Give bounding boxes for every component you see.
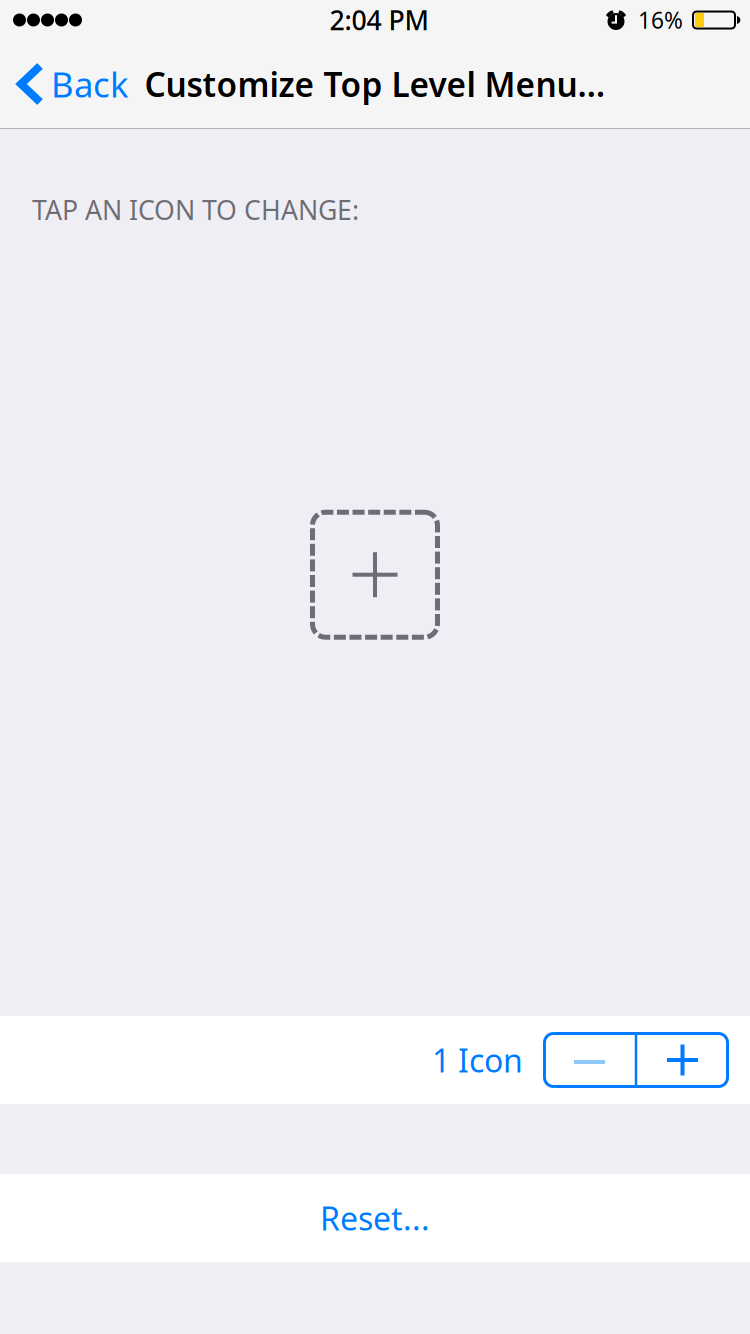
staticText: Customize Top Level Menu… — [144, 62, 605, 106]
staticText: Back — [51, 61, 129, 107]
button[interactable]: Decrease — [543, 1032, 636, 1088]
button[interactable]: Reset... — [0, 1174, 750, 1262]
button[interactable]: Increase — [636, 1032, 729, 1088]
button[interactable]: Add icon — [310, 510, 440, 640]
staticText: TAP AN ICON TO CHANGE: — [32, 192, 359, 227]
button[interactable]: Back — [0, 40, 145, 128]
staticText: 2:04 PM — [329, 2, 428, 38]
staticText: Reset... — [320, 1197, 430, 1239]
staticText: 16% — [638, 5, 683, 35]
staticText: 1 Icon — [432, 1039, 523, 1081]
